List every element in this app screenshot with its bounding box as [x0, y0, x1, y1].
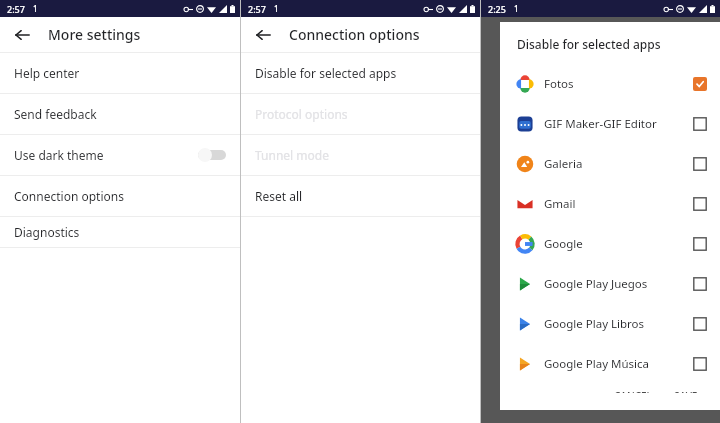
staticText: Use dark theme	[14, 147, 198, 163]
staticText: Google	[544, 236, 693, 252]
button[interactable]: Use dark theme	[0, 135, 240, 175]
staticText: 1	[274, 3, 279, 14]
staticText: Gmail	[544, 196, 693, 212]
staticText: 2:57	[7, 3, 25, 15]
button[interactable]: Galeria	[500, 144, 720, 184]
button[interactable]: Diagnostics	[0, 217, 240, 247]
staticText: GIF Maker-GIF Editor	[544, 116, 693, 132]
staticText: Protocol options	[255, 106, 466, 122]
button[interactable]: Back	[8, 21, 36, 49]
staticText: Galeria	[544, 156, 693, 172]
staticText: Disable for selected apps	[255, 65, 466, 81]
staticText: SAVE	[674, 389, 698, 393]
staticText: Reset all	[255, 188, 466, 204]
button[interactable]: Back	[249, 21, 277, 49]
button[interactable]: Google Play Juegos	[500, 264, 720, 304]
button[interactable]: Connection options	[0, 176, 240, 216]
staticText: 2:25	[488, 3, 506, 15]
button[interactable]: Gmail	[500, 184, 720, 224]
button[interactable]: GIF Maker-GIF Editor	[500, 104, 720, 144]
staticText: Connection options	[289, 25, 420, 44]
staticText: 2:57	[248, 3, 266, 15]
staticText: Google Play Música	[544, 356, 693, 372]
staticText: Connection options	[14, 188, 226, 204]
button[interactable]: Help center	[0, 53, 240, 93]
staticText: Fotos	[544, 76, 693, 92]
staticText: Help center	[14, 65, 226, 81]
button[interactable]: Reset all	[241, 176, 480, 216]
staticText: Send feedback	[14, 106, 226, 122]
button[interactable]: Tunnel mode	[241, 135, 480, 175]
button[interactable]: CANCEL	[606, 384, 660, 398]
staticText: Tunnel mode	[255, 147, 466, 163]
button[interactable]: Protocol options	[241, 94, 480, 134]
staticText: Google Play Juegos	[544, 276, 693, 292]
button[interactable]: Send feedback	[0, 94, 240, 134]
button[interactable]: Disable for selected apps	[241, 53, 480, 93]
button[interactable]: Google	[500, 224, 720, 264]
staticText: 1	[514, 3, 519, 14]
staticText: CANCEL	[614, 389, 652, 393]
staticText: Google Play Libros	[544, 316, 693, 332]
button[interactable]: SAVE	[666, 384, 706, 398]
button[interactable]: Google Play Libros	[500, 304, 720, 344]
staticText: More settings	[48, 25, 141, 44]
button[interactable]: Fotos	[500, 64, 720, 104]
staticText: Disable for selected apps	[517, 36, 661, 52]
staticText: Diagnostics	[14, 224, 226, 240]
staticText: 1	[33, 3, 38, 14]
button[interactable]: Google Play Música	[500, 344, 720, 384]
